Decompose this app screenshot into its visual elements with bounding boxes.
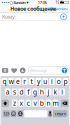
button[interactable]: q: [1, 78, 7, 85]
staticText: x: [19, 99, 23, 108]
staticText: p: [64, 77, 68, 86]
staticText: h: [40, 87, 44, 96]
button[interactable]: b: [39, 100, 45, 107]
staticText: v: [33, 99, 36, 108]
button[interactable]: v: [32, 100, 38, 107]
button[interactable]: h: [39, 88, 45, 95]
staticText: q: [2, 77, 6, 86]
button[interactable]: Camera: [2, 67, 9, 73]
staticText: j: [48, 87, 50, 96]
button[interactable]: t: [29, 78, 34, 85]
button[interactable]: j: [46, 88, 51, 95]
staticText: y: [37, 77, 40, 86]
button[interactable]: c: [25, 100, 31, 107]
staticText: 17:06: [38, 0, 47, 5]
button[interactable]: Digital Touch: [11, 67, 17, 73]
button[interactable]: Send: [61, 67, 68, 74]
button[interactable]: u: [42, 78, 48, 85]
staticText: k: [53, 87, 57, 96]
staticText: iMessage: [30, 68, 47, 73]
staticText: Отменить: [50, 6, 68, 11]
button[interactable]: n: [46, 100, 51, 107]
staticText: t: [31, 77, 33, 86]
button[interactable]: p: [63, 78, 68, 85]
staticText: u: [43, 77, 47, 86]
staticText: f: [27, 87, 29, 96]
staticText: Новое сообщение: [10, 5, 56, 12]
button[interactable]: k: [52, 88, 58, 95]
staticText: a: [6, 87, 10, 96]
button[interactable]: 123: [3, 110, 10, 117]
button[interactable]: Add contact: [60, 13, 68, 21]
staticText: g: [33, 87, 37, 96]
button[interactable]: r: [22, 78, 28, 85]
button[interactable]: x: [18, 100, 24, 107]
staticText: Кому:: [2, 13, 16, 20]
button[interactable]: e: [15, 78, 21, 85]
button[interactable]: z: [12, 100, 17, 107]
staticText: e: [16, 77, 20, 86]
button[interactable]: l: [59, 88, 65, 95]
staticText: i: [51, 77, 53, 86]
button[interactable]: w: [8, 78, 14, 85]
staticText: o: [57, 77, 61, 86]
staticText: z: [13, 99, 16, 108]
button[interactable]: Space: [24, 110, 47, 117]
staticText: ••••○: [1, 0, 12, 5]
staticText: l: [61, 87, 63, 96]
staticText: return: [55, 111, 66, 116]
button[interactable]: m: [52, 100, 58, 107]
staticText: ▼: [25, 1, 28, 4]
staticText: r: [23, 77, 26, 86]
staticText: d: [19, 87, 23, 96]
button[interactable]: f: [25, 88, 31, 95]
button[interactable]: Next keyboard: [17, 110, 23, 117]
button[interactable]: i: [49, 78, 55, 85]
button[interactable]: o: [56, 78, 62, 85]
button[interactable]: Emoji: [11, 110, 16, 117]
staticText: m: [52, 99, 58, 108]
staticText: s: [13, 87, 16, 96]
button[interactable]: a: [5, 88, 11, 95]
button[interactable]: Shift: [1, 100, 9, 107]
button[interactable]: return: [53, 110, 67, 117]
button[interactable]: Отменить: [49, 5, 69, 12]
staticText: 123: [3, 111, 9, 116]
button[interactable]: Dictate: [48, 110, 52, 117]
staticText: 92 %: [56, 1, 63, 4]
staticText: n: [47, 99, 51, 108]
staticText: c: [27, 99, 30, 108]
staticText: w: [9, 77, 14, 86]
staticText: b: [40, 99, 44, 108]
button[interactable]: Delete: [61, 100, 68, 107]
button[interactable]: y: [35, 78, 41, 85]
button[interactable]: Apps: [20, 67, 26, 73]
button[interactable]: s: [12, 88, 17, 95]
button[interactable]: d: [18, 88, 24, 95]
staticText: Билайн: [12, 0, 25, 5]
button[interactable]: g: [32, 88, 38, 95]
